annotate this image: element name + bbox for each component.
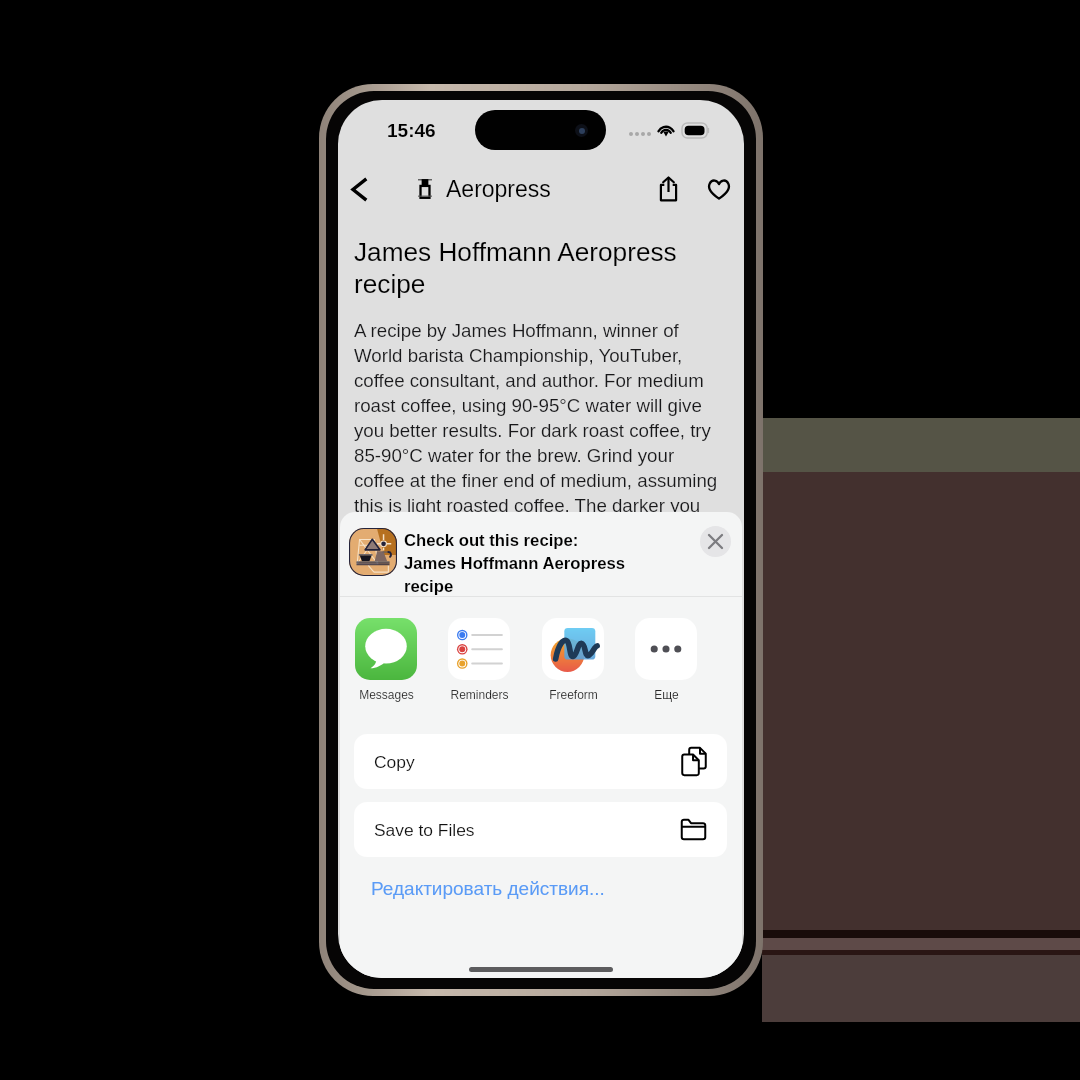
- button[interactable]: Редактировать действия...: [371, 878, 605, 899]
- button[interactable]: Favorite: [698, 168, 740, 210]
- staticText: Freeform: [549, 688, 598, 701]
- staticText: Еще: [654, 688, 679, 701]
- staticText: Copy: [374, 752, 415, 771]
- staticText: A recipe by James Hoffmann, winner of Wo…: [354, 320, 725, 516]
- staticText: Messages: [359, 688, 414, 701]
- staticText: Aeropress: [446, 176, 551, 202]
- button[interactable]: Еще: [628, 618, 704, 701]
- button[interactable]: Save to Files: [354, 802, 727, 857]
- button[interactable]: Share: [648, 168, 690, 210]
- button[interactable]: Copy: [354, 734, 727, 789]
- staticText: Save to Files: [374, 820, 475, 839]
- button[interactable]: Back: [347, 172, 387, 212]
- staticText: 15:46: [387, 120, 436, 141]
- staticText: Reminders: [450, 688, 509, 701]
- button[interactable]: Close: [700, 526, 731, 557]
- button[interactable]: Messages: [348, 618, 424, 701]
- staticText: James Hoffmann Aeropress recipe: [354, 237, 732, 299]
- button[interactable]: Freeform: [535, 618, 611, 701]
- staticText: Check out this recipe: James Hoffmann Ae…: [404, 531, 628, 596]
- button[interactable]: Reminders: [441, 618, 517, 701]
